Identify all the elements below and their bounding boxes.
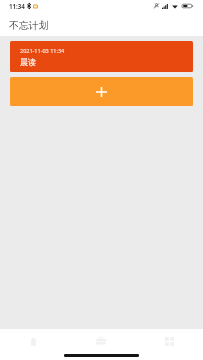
staticText: 2021-11-03 11:34 bbox=[20, 47, 65, 54]
staticText: 11:34 bbox=[9, 2, 25, 10]
staticText: 晨读 bbox=[20, 57, 37, 67]
staticText: 不忘计划 bbox=[9, 19, 49, 31]
button[interactable]: Add plan bbox=[10, 77, 193, 106]
button[interactable]: 2021-11-03 11:34 bbox=[10, 41, 193, 72]
